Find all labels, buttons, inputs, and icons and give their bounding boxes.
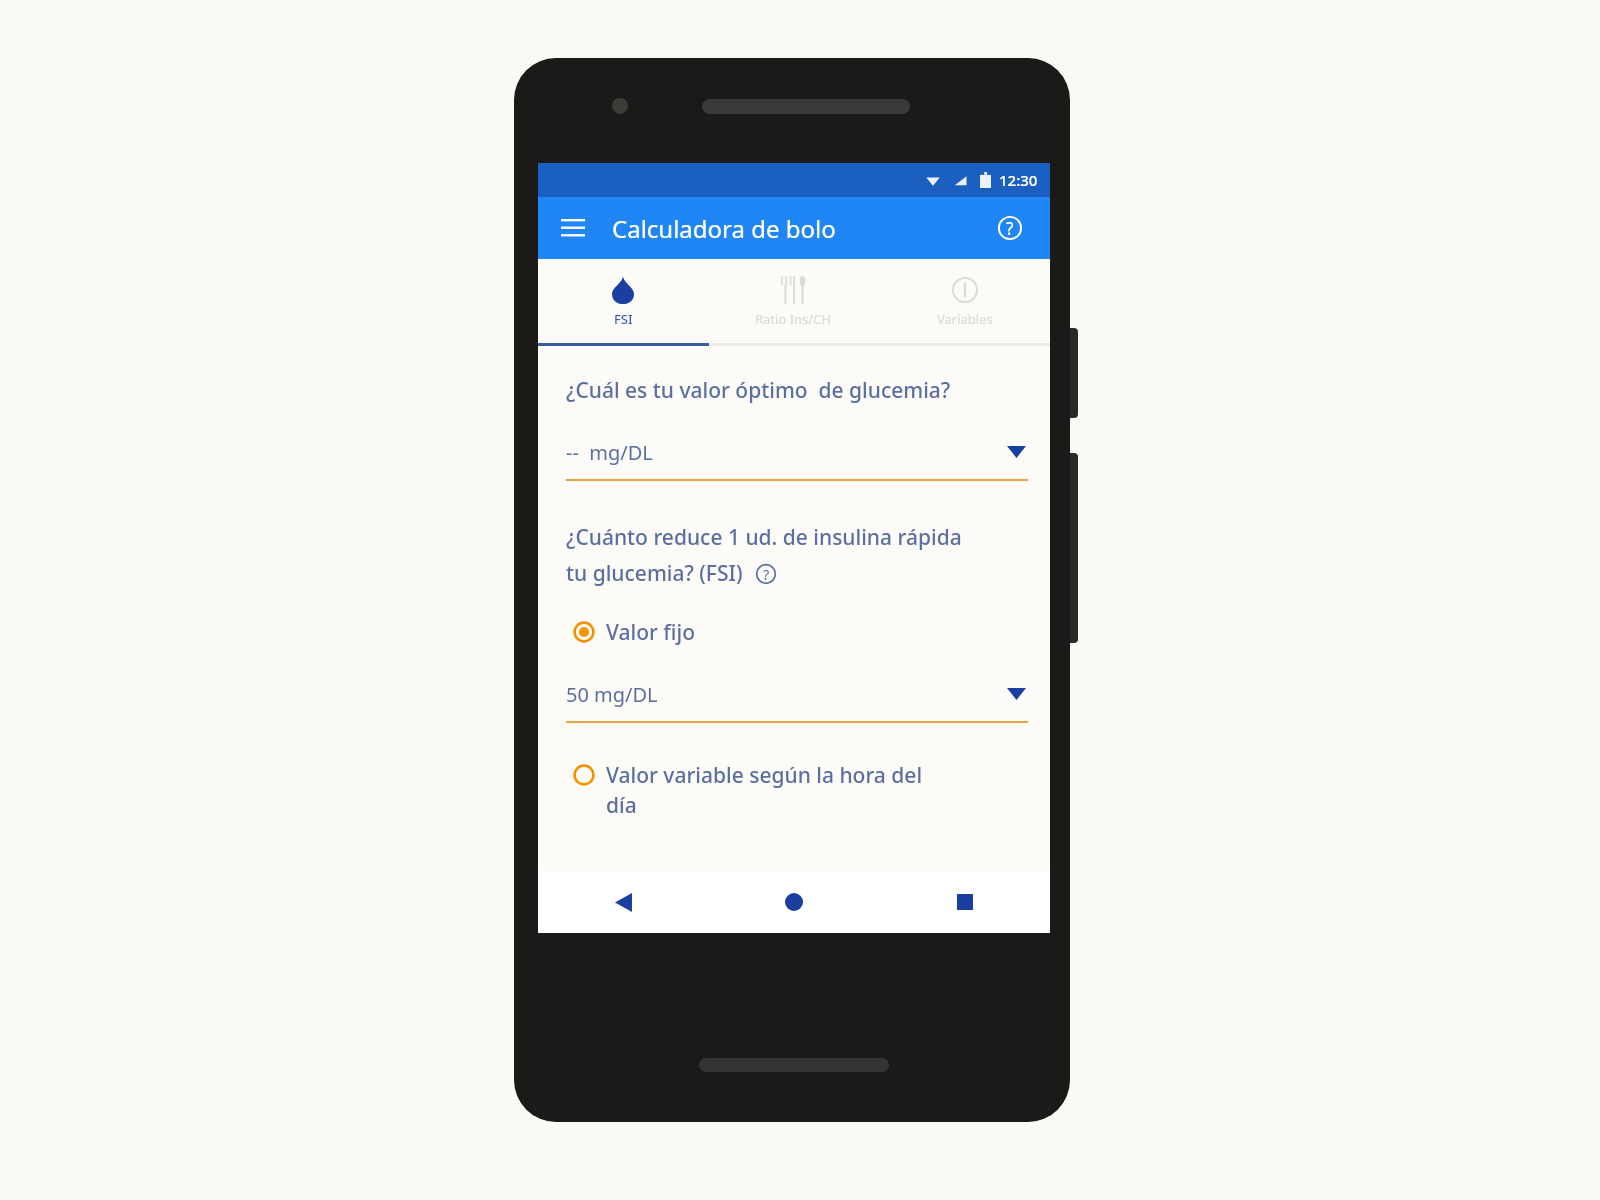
staticText: Valor fijo — [606, 618, 695, 647]
staticText: Calculadora de bolo — [612, 212, 836, 245]
staticText: Variables — [937, 310, 993, 328]
button[interactable]: Variables — [879, 259, 1050, 343]
staticText: tu glucemia? (FSI) — [566, 559, 743, 588]
staticText: 12:30 — [999, 170, 1038, 190]
staticText: Ratio Ins/CH — [755, 310, 832, 328]
button[interactable]: More info about FSI — [753, 561, 779, 587]
staticText: FSI — [614, 310, 633, 328]
button[interactable]: Ratio Ins/CH — [708, 259, 879, 343]
staticText: ? — [1006, 217, 1014, 240]
button[interactable]: FSI — [538, 259, 708, 343]
button[interactable]: Valor variable según la hora del día — [566, 761, 1028, 819]
staticText: ¿Cuánto reduce 1 ud. de insulina rápida — [566, 523, 962, 552]
button[interactable]: Valor fijo — [566, 618, 1028, 647]
button[interactable]: Home — [708, 871, 879, 933]
button[interactable]: Back — [538, 871, 708, 933]
button[interactable]: -- mg/DL — [566, 435, 1028, 481]
staticText: 50 mg/DL — [566, 681, 658, 708]
staticText: ¿Cuál es tu valor óptimo de glucemia? — [566, 376, 951, 405]
button[interactable]: Recent apps — [879, 871, 1050, 933]
button[interactable]: Help — [988, 206, 1032, 250]
staticText: Valor variable según la hora del día — [606, 761, 923, 819]
staticText: -- mg/DL — [566, 439, 653, 466]
button[interactable]: 50 mg/DL — [566, 677, 1028, 723]
staticText: ? — [763, 564, 770, 584]
button[interactable]: Open navigation menu — [552, 207, 594, 249]
